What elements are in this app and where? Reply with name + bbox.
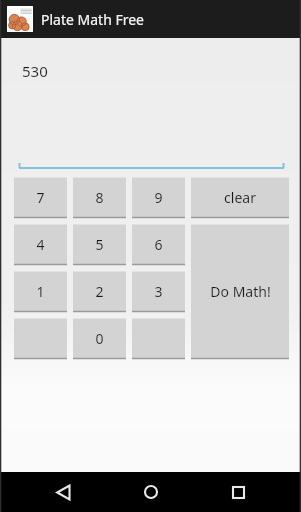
staticText: 3 <box>154 282 163 301</box>
button[interactable] <box>14 318 67 359</box>
button[interactable]: 5 <box>73 224 126 265</box>
button[interactable]: 2 <box>73 271 126 312</box>
staticText: clear <box>224 188 256 207</box>
staticText: 6 <box>154 235 163 254</box>
button[interactable]: 4 <box>14 224 67 265</box>
button[interactable]: clear <box>191 177 289 218</box>
button[interactable]: 530 <box>3 38 298 170</box>
button[interactable]: 9 <box>132 177 185 218</box>
button[interactable]: Recent apps <box>214 472 262 512</box>
button[interactable]: 0 <box>73 318 126 359</box>
button[interactable] <box>132 318 185 359</box>
staticText: 2 <box>95 282 104 301</box>
staticText: 5 <box>95 235 104 254</box>
staticText: Plate Math Free <box>41 10 144 29</box>
button[interactable]: Back <box>39 472 87 512</box>
staticText: 8 <box>95 188 104 207</box>
button[interactable]: Home <box>127 472 175 512</box>
staticText: 530 <box>22 61 48 81</box>
button[interactable]: 7 <box>14 177 67 218</box>
staticText: 0 <box>95 329 104 348</box>
staticText: 7 <box>36 188 45 207</box>
button[interactable]: 6 <box>132 224 185 265</box>
staticText: 1 <box>36 282 45 301</box>
staticText: 9 <box>154 188 163 207</box>
button[interactable]: 3 <box>132 271 185 312</box>
button[interactable]: Do Math! <box>191 224 289 359</box>
staticText: Do Math! <box>210 282 271 301</box>
button[interactable]: 8 <box>73 177 126 218</box>
button[interactable]: 1 <box>14 271 67 312</box>
staticText: 4 <box>36 235 45 254</box>
